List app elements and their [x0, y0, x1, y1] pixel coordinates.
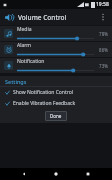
- button[interactable]: Recent apps: [80, 168, 96, 180]
- button[interactable]: More options: [98, 10, 108, 24]
- staticText: 73%: [97, 63, 108, 69]
- staticText: Done: [50, 113, 62, 119]
- button[interactable]: Back: [16, 168, 32, 180]
- staticText: 19:58: [96, 1, 109, 8]
- staticText: 78%: [97, 31, 108, 37]
- button[interactable]: Home: [48, 168, 64, 180]
- button[interactable]: Alarm: [0, 42, 112, 57]
- staticText: Alarm: [17, 42, 32, 49]
- button[interactable]: Notification: [0, 58, 112, 73]
- staticText: Notification: [17, 58, 45, 65]
- button[interactable]: Enable Vibration Feedback: [0, 98, 112, 109]
- staticText: Settings: [5, 78, 27, 85]
- button[interactable]: Media: [0, 26, 112, 41]
- staticText: Volume Control: [18, 13, 67, 22]
- staticText: Media: [17, 26, 32, 33]
- staticText: Enable Vibration Feedback: [13, 100, 76, 107]
- button[interactable]: Done: [45, 111, 67, 121]
- staticText: Show Notification Control: [13, 89, 73, 96]
- staticText: 86%: [97, 47, 108, 53]
- button[interactable]: Show Notification Control: [0, 87, 112, 98]
